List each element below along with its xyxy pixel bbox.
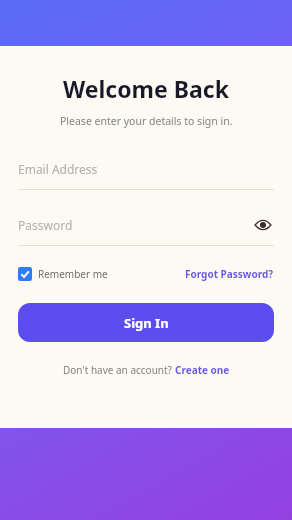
- staticText: Please enter your details to sign in.: [60, 114, 233, 128]
- staticText: Don't have an account?: [63, 363, 175, 377]
- staticText: Remember me: [38, 267, 108, 281]
- staticText: Welcome Back: [63, 73, 229, 104]
- button[interactable]: Remember me: [18, 267, 108, 281]
- staticText: Create one: [175, 363, 230, 377]
- button[interactable]: Password: [18, 212, 274, 246]
- button[interactable]: Show password: [252, 214, 274, 236]
- staticText: Email Address: [18, 161, 98, 177]
- staticText: Sign In: [124, 314, 169, 332]
- button[interactable]: Create one: [175, 363, 230, 377]
- button[interactable]: Email Address: [18, 156, 274, 190]
- staticText: Forgot Password?: [185, 267, 274, 281]
- button[interactable]: Forgot Password?: [185, 267, 274, 281]
- button[interactable]: Sign In: [18, 303, 274, 342]
- staticText: Password: [18, 217, 252, 233]
